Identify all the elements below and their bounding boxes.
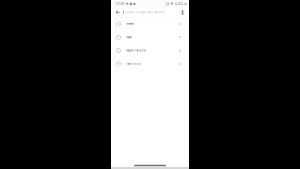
staticText: Search or type web address [125,11,164,14]
button[interactable]: Back [114,9,122,15]
staticText: cheep [126,36,132,39]
staticText: junior pitch [126,62,140,65]
staticText: 10:48 [115,1,124,6]
button[interactable]: wheeler [111,17,189,31]
button[interactable]: hunger line corvu [111,44,189,57]
staticText: hunger line corvu [126,49,145,52]
staticText: wheeler [126,22,134,25]
button[interactable]: cheep [111,31,189,44]
button[interactable]: junior pitch [111,57,189,70]
button[interactable]: Voice search [179,9,186,15]
